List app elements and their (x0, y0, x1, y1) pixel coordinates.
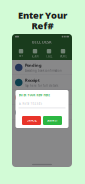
button[interactable]: MORE (56, 49, 70, 58)
button[interactable]: Overdue (12, 90, 72, 105)
staticText: History (25, 108, 40, 113)
button[interactable]: Receipt (12, 75, 72, 90)
button[interactable]: CANCEL (22, 116, 41, 125)
button[interactable]: PAY (14, 49, 28, 58)
button[interactable]: History (12, 105, 72, 120)
staticText: Ref# (31, 19, 53, 32)
staticText: Previous payments, receipts (25, 114, 62, 117)
staticText: SCAN (31, 55, 38, 58)
staticText: CALL (46, 55, 52, 58)
staticText: Overdue (25, 93, 42, 98)
staticText: Enter Your (18, 9, 67, 21)
staticText: Receipt (25, 78, 40, 83)
button[interactable]: SCAN (28, 49, 42, 58)
staticText: MORE (59, 55, 66, 58)
staticText: SUBMIT (47, 119, 58, 122)
button[interactable]: SUBMIT (43, 116, 62, 125)
staticText: Pending (25, 63, 42, 68)
staticText: Tap here for full details (25, 84, 58, 87)
staticText: CANCEL (26, 119, 36, 122)
staticText: ENTER YOUR REF# HERE (18, 93, 49, 97)
staticText: Ex. Ref# 102345 (18, 102, 42, 105)
button[interactable]: Pending (12, 60, 72, 75)
button[interactable]: CALL (42, 49, 56, 58)
staticText: BILL DESK (32, 39, 52, 45)
staticText: Awaiting bank confirmation (25, 69, 62, 72)
staticText: PAY (18, 55, 23, 58)
